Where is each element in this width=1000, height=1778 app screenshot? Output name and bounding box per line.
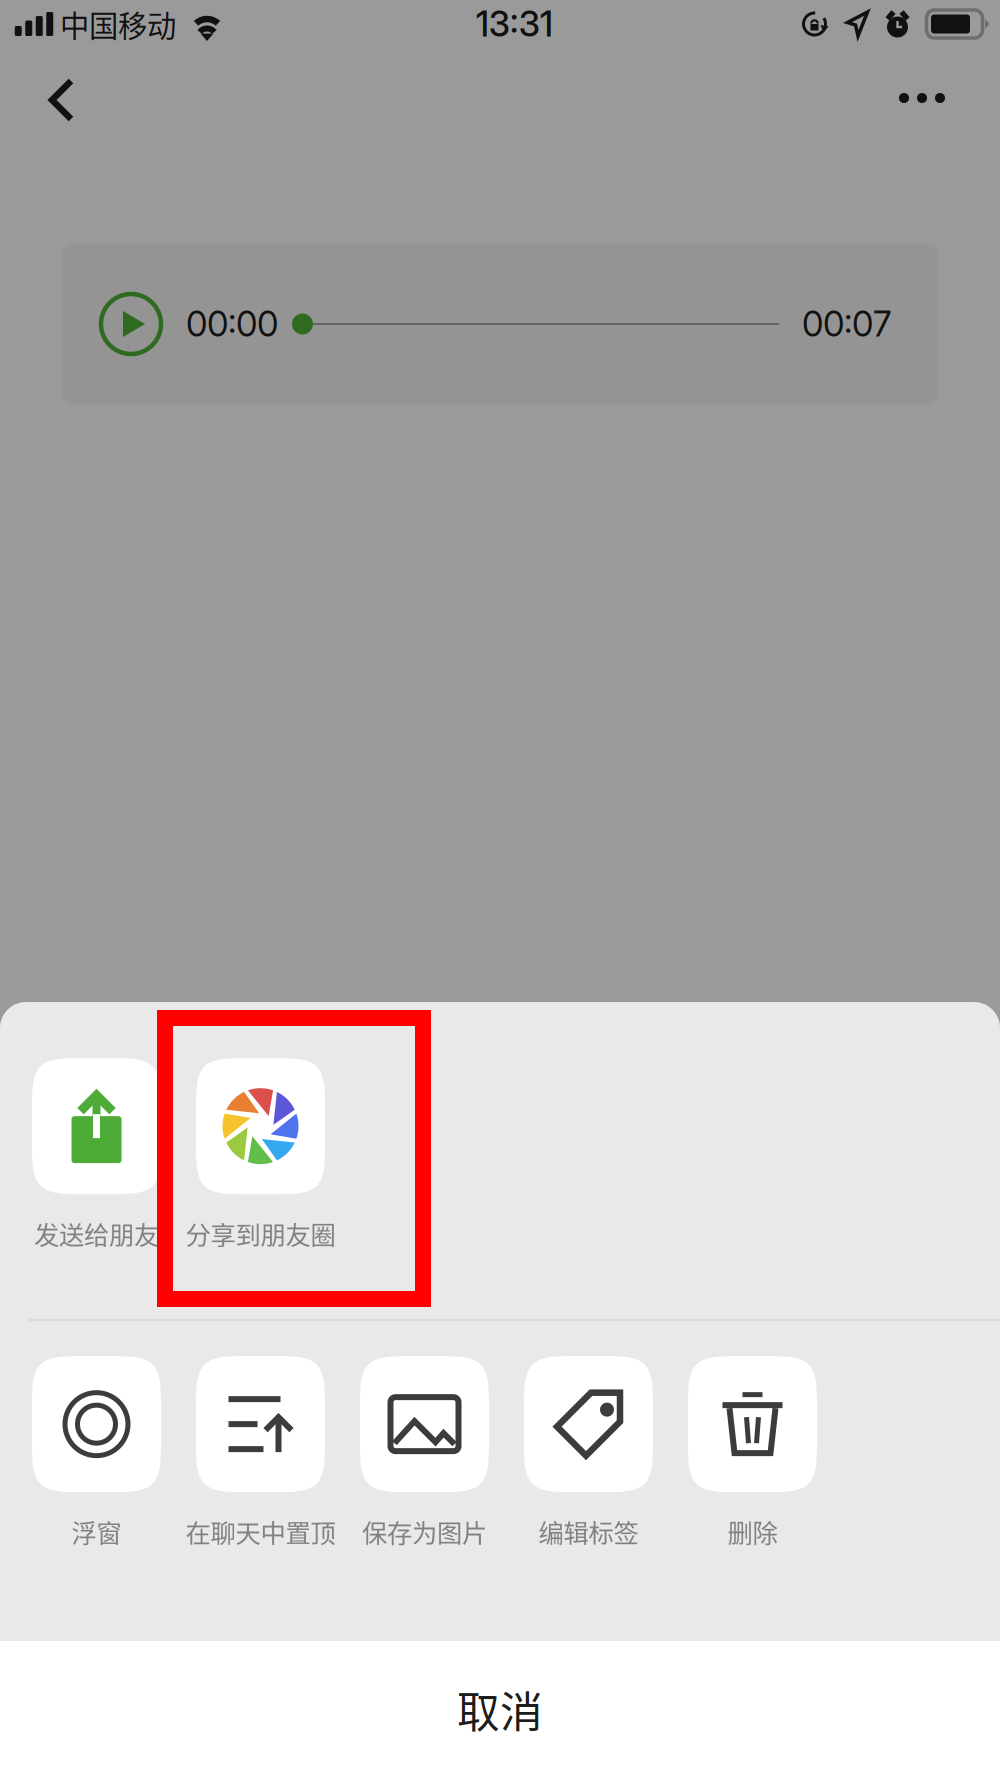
button[interactable]: Back — [0, 48, 101, 138]
staticText: 00:00 — [186, 303, 278, 345]
staticText: 取消 — [457, 1679, 543, 1740]
staticText: 删除 — [727, 1513, 777, 1550]
staticText: 在聊天中置顶 — [185, 1513, 335, 1550]
button[interactable]: 发送给朋友 — [32, 1058, 161, 1252]
button[interactable]: Play voice message — [100, 293, 162, 355]
button[interactable]: 编辑标签 — [524, 1356, 653, 1550]
button[interactable]: 分享到朋友圈 — [185, 1058, 335, 1252]
staticText: 编辑标签 — [538, 1513, 638, 1550]
button[interactable]: More — [871, 47, 1000, 139]
button[interactable]: 浮窗 — [32, 1356, 161, 1550]
staticText: 浮窗 — [71, 1513, 121, 1550]
button[interactable]: 保存为图片 — [360, 1356, 489, 1550]
button[interactable]: 在聊天中置顶 — [185, 1356, 335, 1550]
staticText: 保存为图片 — [362, 1513, 487, 1550]
button[interactable]: 取消 — [0, 1641, 1000, 1778]
staticText: 发送给朋友 — [34, 1215, 159, 1252]
staticText: 00:07 — [802, 303, 891, 345]
staticText: 13:31 — [476, 3, 553, 45]
button[interactable]: 删除 — [688, 1356, 817, 1550]
staticText: 分享到朋友圈 — [185, 1215, 335, 1252]
staticText: 中国移动 — [60, 3, 176, 45]
